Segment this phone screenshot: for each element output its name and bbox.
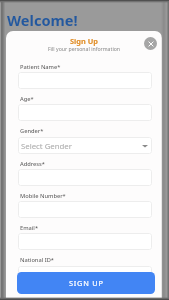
staticText: National ID*: [20, 256, 54, 264]
button[interactable]: [18, 104, 152, 121]
staticText: Address*: [20, 160, 45, 168]
staticText: Gender*: [20, 127, 44, 135]
button[interactable]: [18, 169, 152, 186]
button[interactable]: SIGN UP: [17, 272, 155, 294]
staticText: Age*: [20, 95, 34, 103]
button[interactable]: [18, 72, 152, 89]
staticText: Patient Name*: [20, 63, 61, 71]
button[interactable]: Select Gender: [18, 137, 152, 154]
button[interactable]: [18, 233, 152, 250]
staticText: Select Gender: [21, 141, 72, 152]
button[interactable]: Close: [144, 37, 157, 50]
staticText: SIGN UP: [69, 278, 104, 288]
staticText: Sign Up: [6, 36, 162, 46]
button[interactable]: [18, 266, 152, 283]
staticText: Fill your personal information: [6, 45, 162, 52]
staticText: Email*: [20, 224, 38, 232]
staticText: Welcome!: [7, 10, 78, 30]
button[interactable]: [18, 201, 152, 218]
staticText: Mobile Number*: [20, 192, 66, 200]
